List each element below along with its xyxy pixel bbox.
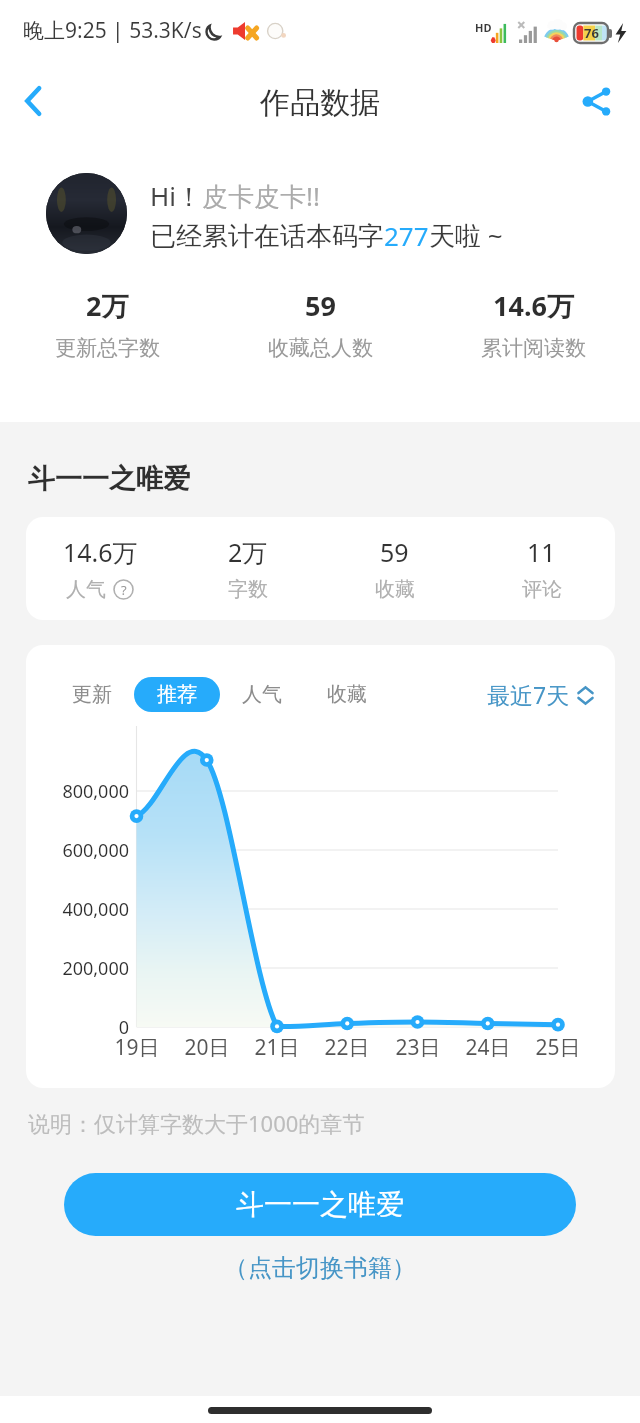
staticText: 14.6万 — [493, 287, 574, 324]
staticText: HD — [475, 20, 492, 35]
staticText: 推荐 — [157, 682, 197, 707]
staticText: 59 — [305, 287, 336, 324]
button[interactable]: Share — [568, 73, 624, 129]
staticText: 59 — [380, 535, 409, 569]
button[interactable]: 收藏 — [316, 676, 378, 713]
staticText: 2万 — [86, 287, 129, 324]
staticText: 76 — [584, 24, 599, 42]
staticText: 字数 — [228, 577, 268, 602]
staticText: 累计阅读数 — [481, 335, 586, 361]
staticText: 晚上9:25 | 53.3K/s — [23, 16, 202, 45]
staticText: 24日 — [448, 1033, 528, 1062]
staticText: 600,000 — [26, 838, 129, 863]
button[interactable]: 推荐 — [134, 677, 220, 712]
staticText: 22日 — [307, 1033, 387, 1062]
staticText: 19日 — [97, 1033, 177, 1062]
staticText: 皮卡皮卡!! — [202, 178, 320, 214]
button[interactable]: 最近7天 — [481, 673, 600, 716]
staticText: 人气 — [66, 577, 106, 602]
staticText: 21日 — [237, 1033, 317, 1062]
staticText: 200,000 — [26, 956, 129, 981]
staticText: 23日 — [378, 1033, 458, 1062]
staticText: 更新 — [72, 682, 112, 707]
button[interactable]: 人气 — [231, 676, 293, 713]
staticText: 20日 — [167, 1033, 247, 1062]
button[interactable]: （点击切换书籍） — [216, 1247, 424, 1289]
staticText: 最近7天 — [487, 679, 570, 710]
staticText: 人气 — [242, 682, 282, 707]
staticText: 已经累计在话本码字 — [150, 220, 384, 253]
staticText: 400,000 — [26, 897, 129, 922]
staticText: Hi！ — [150, 178, 202, 214]
staticText: ? — [121, 581, 127, 599]
staticText: 天啦 ~ — [429, 217, 503, 253]
staticText: 斗一一之唯爱 — [236, 1187, 404, 1222]
staticText: 2万 — [228, 535, 268, 569]
staticText: 25日 — [518, 1033, 598, 1062]
button[interactable]: 斗一一之唯爱 — [64, 1173, 576, 1236]
staticText: 800,000 — [26, 779, 129, 804]
staticText: 收藏总人数 — [268, 335, 373, 361]
staticText: 11 — [527, 535, 556, 569]
staticText: 收藏 — [327, 682, 367, 707]
staticText: 277 — [384, 218, 429, 253]
staticText: 作品数据 — [260, 84, 380, 122]
button[interactable]: 更新 — [61, 676, 123, 713]
button[interactable]: Back — [6, 73, 62, 129]
staticText: 评论 — [522, 577, 562, 602]
staticText: 14.6万 — [63, 535, 138, 569]
staticText: 更新总字数 — [55, 335, 160, 361]
staticText: （点击切换书籍） — [224, 1253, 416, 1283]
staticText: 收藏 — [375, 577, 415, 602]
staticText: 说明：仅计算字数大于1000的章节 — [28, 1108, 365, 1138]
staticText: 0 — [26, 1015, 129, 1040]
staticText: 斗一一之唯爱 — [28, 462, 190, 496]
